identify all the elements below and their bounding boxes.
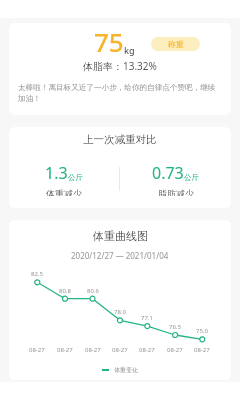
staticText: 2020/12/27 — 2021/01/04 <box>71 250 169 261</box>
staticText: 77.1 <box>141 314 153 322</box>
staticText: 脂肪减少 <box>158 188 194 196</box>
button[interactable]: 称重 <box>151 37 200 51</box>
staticText: 体重减少 <box>46 188 82 196</box>
staticText: 0.73 <box>152 162 184 184</box>
staticText: 75 <box>94 24 124 59</box>
staticText: 称重 <box>168 39 184 49</box>
staticText: 80.6 <box>87 287 99 295</box>
staticText: 08-27 <box>85 346 101 354</box>
staticText: 08-27 <box>167 346 183 354</box>
staticText: 公斤 <box>184 173 199 182</box>
staticText: 76.5 <box>169 323 181 331</box>
staticText: 08-27 <box>139 346 155 354</box>
staticText: 75.0 <box>196 327 208 335</box>
staticText: 上一次减重对比 <box>83 133 157 146</box>
staticText: 公斤 <box>68 173 83 182</box>
staticText: 体脂率：13.32% <box>83 59 157 73</box>
staticText: 体重曲线图 <box>93 229 148 243</box>
staticText: 08-27 <box>57 346 73 354</box>
staticText: 体重变化 <box>114 366 138 374</box>
staticText: 78.0 <box>114 308 126 316</box>
staticText: 1.3 <box>45 162 68 184</box>
staticText: kg <box>124 44 135 56</box>
staticText: 80.8 <box>59 287 71 295</box>
staticText: 82.5 <box>31 270 43 278</box>
staticText: 08-27 <box>29 346 45 354</box>
staticText: 08-27 <box>112 346 128 354</box>
staticText: 太棒啦！离目标又近了一小步，给你的自律点个赞吧，继续加油！ <box>18 83 222 103</box>
staticText: 08-27 <box>194 346 210 354</box>
